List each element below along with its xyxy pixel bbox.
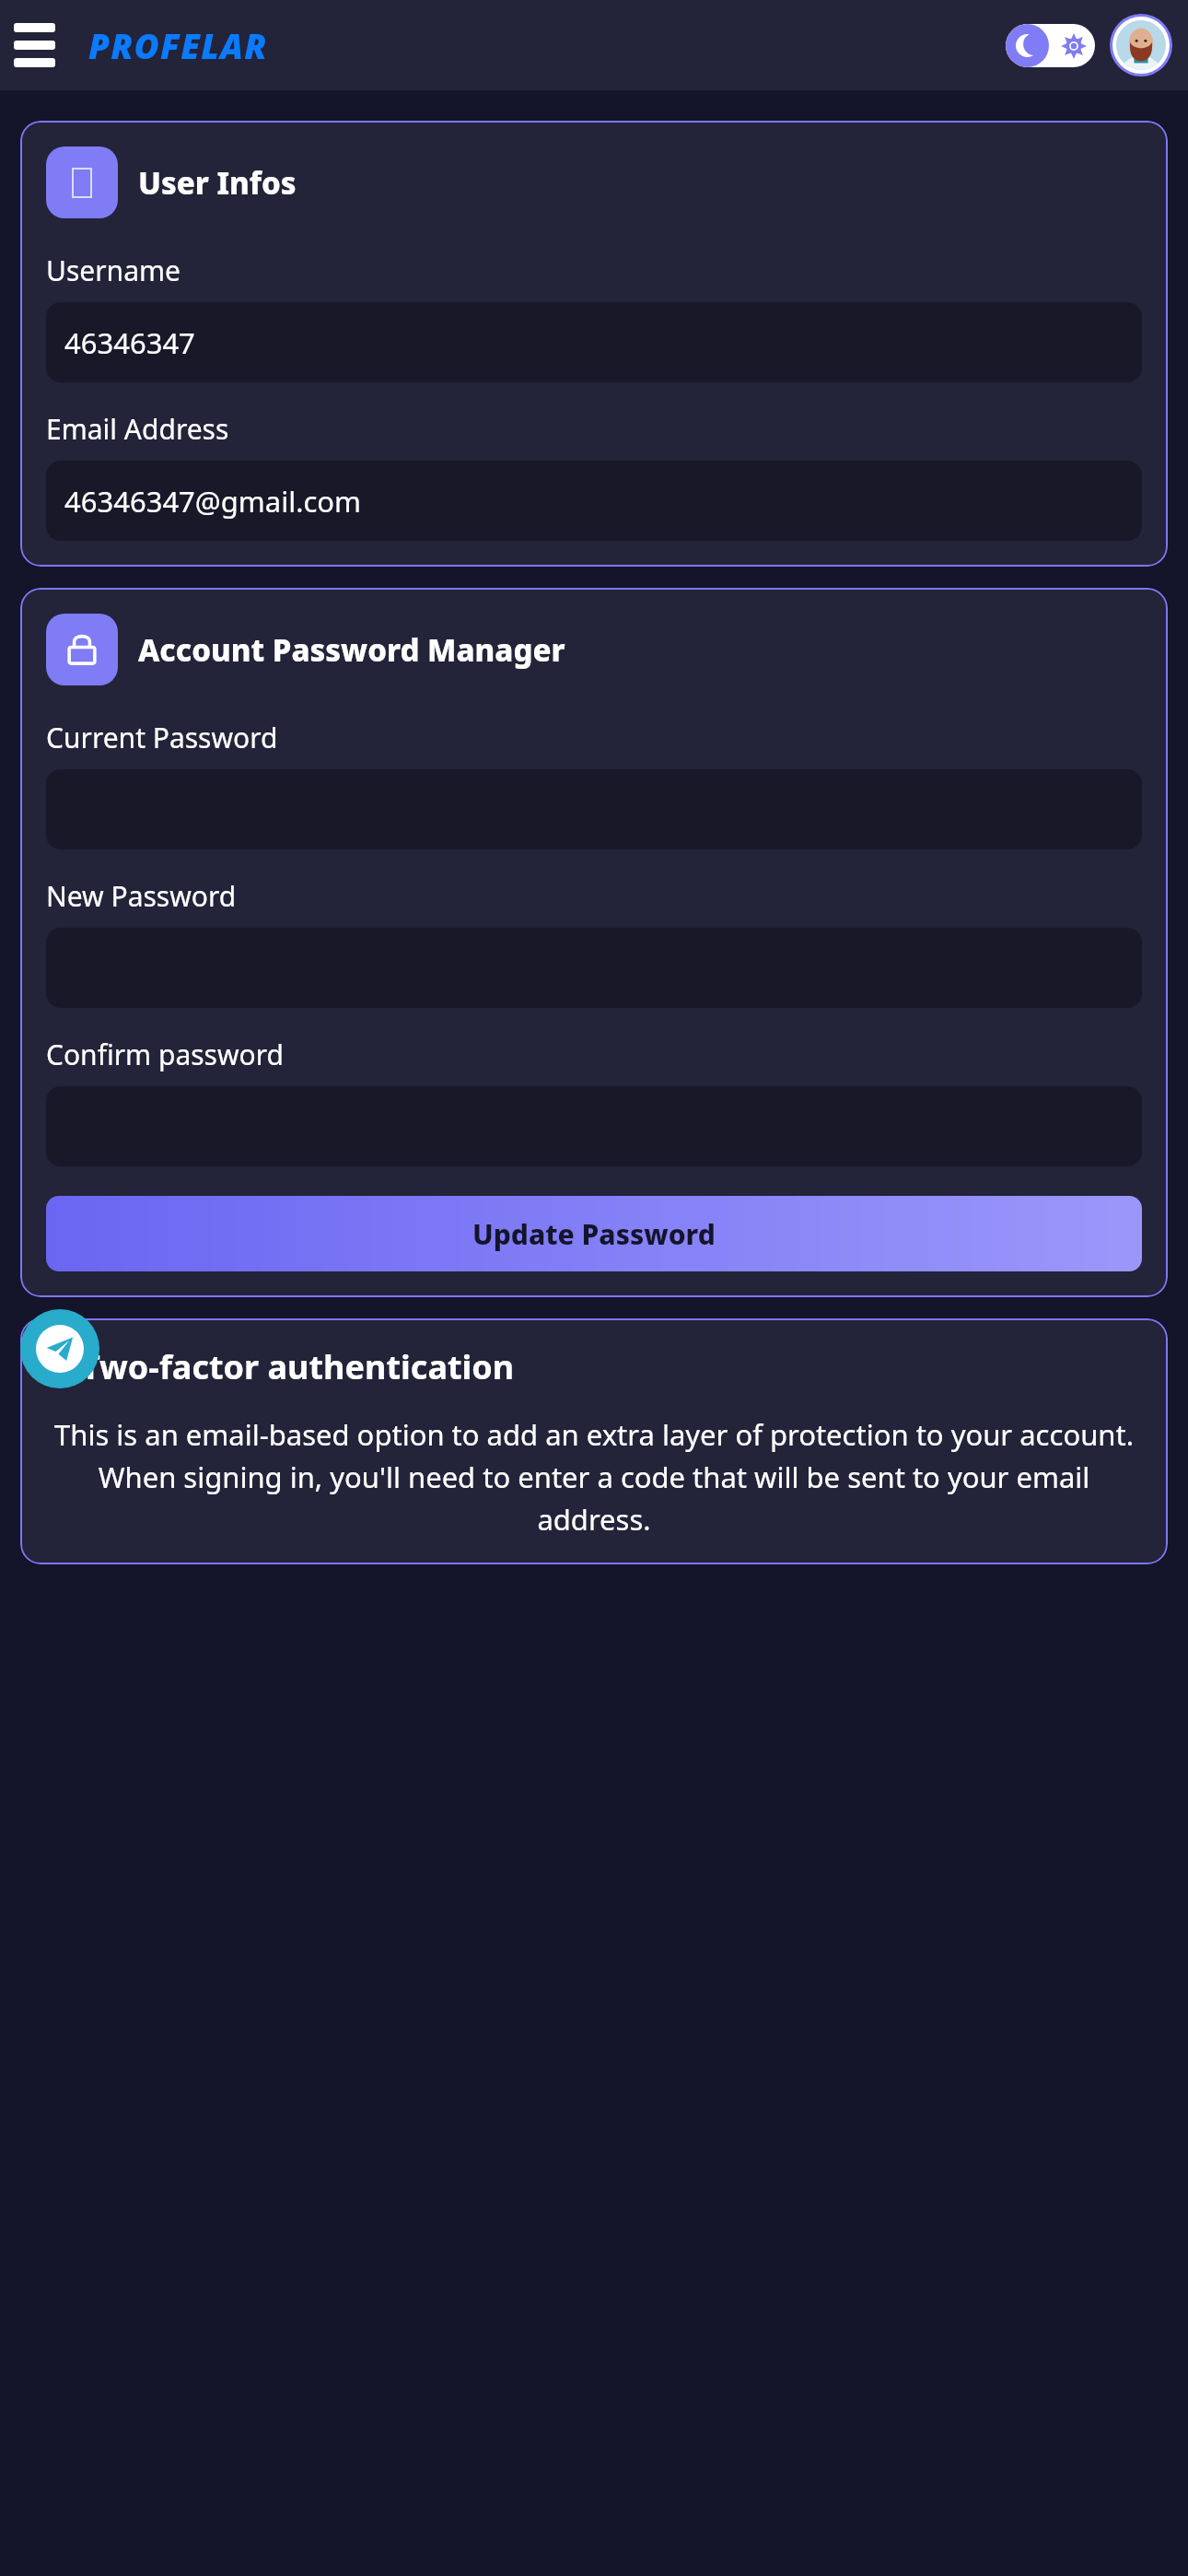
staticText: Current Password <box>46 719 278 756</box>
staticText: This is an email-based option to add an … <box>46 1415 1142 1539</box>
button[interactable]: Telegram <box>20 1309 99 1388</box>
staticText: 46346347 <box>64 323 195 362</box>
button[interactable]: Toggle theme <box>1006 24 1095 67</box>
button[interactable]: 46346347 <box>46 302 1142 382</box>
staticText: Two-factor authentication <box>81 1344 515 1389</box>
staticText: Account Password Manager <box>138 629 565 671</box>
button[interactable]: Menu <box>9 20 59 70</box>
button[interactable]: Profile <box>1116 20 1166 70</box>
staticText: PROFELAR <box>88 22 268 68</box>
staticText: User Infos <box>138 162 297 204</box>
staticText: Confirm password <box>46 1036 284 1073</box>
staticText: Email Address <box>46 410 229 448</box>
staticText: Update Password <box>472 1215 716 1253</box>
button[interactable]: Update Password <box>46 1196 1142 1271</box>
staticText: New Password <box>46 877 237 915</box>
staticText: 46346347@gmail.com <box>64 482 362 521</box>
button[interactable]: 46346347@gmail.com <box>46 461 1142 541</box>
staticText: Username <box>46 252 181 289</box>
